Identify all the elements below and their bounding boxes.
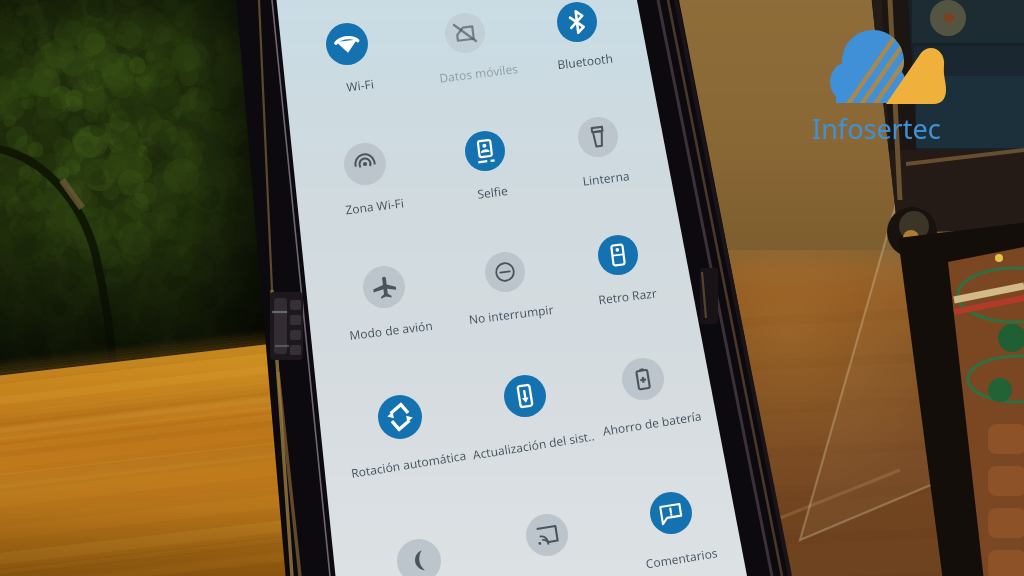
button[interactable]: Selfie (465, 131, 505, 171)
button[interactable]: Rotación automática (307, 437, 508, 490)
staticText: No interrumpir (467, 301, 555, 327)
button[interactable]: Bluetooth (557, 2, 597, 42)
button[interactable]: Datos móviles (445, 13, 485, 53)
button[interactable]: Modo nocturno (397, 539, 441, 576)
button[interactable]: No interrumpir (410, 291, 612, 337)
button[interactable]: Comentarios (650, 492, 692, 534)
button[interactable]: Ahorro de batería (622, 358, 664, 400)
button[interactable]: Selfie (391, 169, 593, 215)
button[interactable]: No interrumpir (485, 252, 525, 292)
staticText: Zona Wi-Fi (344, 194, 405, 217)
button[interactable]: Actualización del sistema (504, 375, 546, 417)
button[interactable]: Ahorro de batería (551, 396, 752, 449)
button[interactable]: Zona Wi-Fi (344, 143, 386, 185)
button[interactable]: Transmitir pantalla (526, 514, 568, 556)
staticText: Modo de avión (348, 317, 434, 343)
staticText: Actualización del sist.. (471, 427, 595, 462)
button[interactable]: Rotación automática (378, 395, 422, 439)
staticText: Retro Razr (597, 284, 658, 307)
button[interactable]: Comentarios (580, 531, 781, 576)
staticText: Wi-Fi (345, 75, 375, 95)
staticText: Ahorro de batería (601, 407, 703, 439)
button[interactable]: Modo de avión (290, 307, 492, 353)
button[interactable]: Actualización del sist.. (432, 418, 633, 471)
button[interactable]: Linterna (578, 117, 618, 157)
button[interactable]: Retro Razr (598, 235, 638, 275)
staticText: Infosertec (812, 110, 941, 146)
staticText: Datos móviles (438, 60, 519, 86)
staticText: Comentarios (644, 544, 719, 571)
button[interactable]: Wi-Fi (326, 23, 368, 65)
button[interactable]: Bluetooth (484, 38, 686, 84)
staticText: Bluetooth (556, 50, 614, 72)
button[interactable]: Zona Wi-Fi (273, 183, 475, 229)
staticText: Selfie (476, 182, 509, 202)
staticText: Linterna (581, 167, 631, 189)
button[interactable]: Datos móviles (377, 50, 579, 96)
staticText: Rotación automática (349, 447, 468, 481)
button[interactable]: Wi-Fi (259, 62, 461, 108)
button[interactable]: Modo de avión (363, 266, 405, 308)
button[interactable]: Linterna (505, 155, 707, 201)
button[interactable]: Retro Razr (526, 273, 728, 319)
